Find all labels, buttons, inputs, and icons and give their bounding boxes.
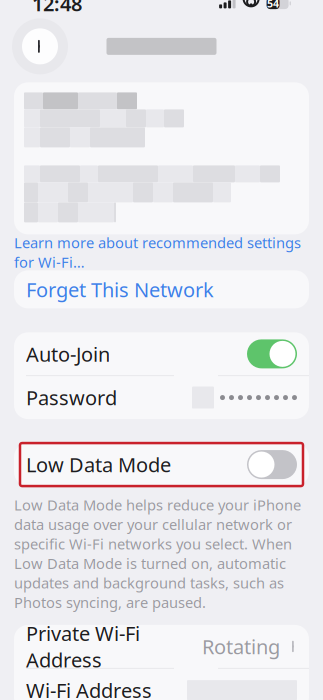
staticText: 12:48 bbox=[32, 0, 82, 17]
staticText: Rotating bbox=[202, 633, 280, 660]
staticText: Low Data Mode bbox=[26, 451, 171, 478]
button[interactable]: Learn more about recommended settings fo… bbox=[0, 242, 323, 262]
staticText: Wi-Fi Address bbox=[26, 677, 152, 700]
staticText: Low Data Mode helps reduce your iPhone d… bbox=[14, 495, 301, 612]
staticText: Password bbox=[26, 384, 117, 411]
staticText: Forget This Network bbox=[26, 276, 214, 303]
button[interactable]: Forget This Network bbox=[14, 270, 309, 308]
button[interactable]: Auto-Join bbox=[14, 332, 309, 375]
button[interactable]: Password bbox=[14, 376, 309, 419]
staticText: Learn more about recommended settings fo… bbox=[14, 233, 301, 272]
staticText: Private Wi-Fi Address bbox=[26, 620, 140, 673]
staticText: 54 bbox=[267, 0, 279, 10]
button[interactable]: Private Wi-Fi Address bbox=[14, 625, 309, 668]
staticText: Auto-Join bbox=[26, 341, 110, 367]
button[interactable]: Wi-Fi Address bbox=[14, 669, 309, 700]
button[interactable]: Back bbox=[12, 18, 68, 74]
button[interactable]: Low Data Mode bbox=[14, 443, 309, 486]
